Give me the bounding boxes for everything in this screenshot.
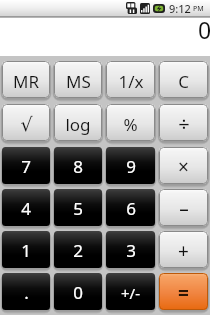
staticText: 1/x — [118, 70, 144, 93]
staticText: C — [178, 70, 189, 93]
staticText: 4 — [21, 197, 31, 220]
staticText: = — [178, 280, 189, 306]
other: 3G data — [126, 2, 137, 14]
staticText: 0 — [73, 281, 83, 304]
staticText: . — [24, 281, 29, 304]
button[interactable]: 3 — [106, 231, 155, 268]
staticText: 0 — [198, 14, 210, 45]
button[interactable]: 2 — [54, 231, 102, 268]
button[interactable]: MR — [2, 61, 50, 98]
staticText: 5 — [73, 197, 83, 220]
button[interactable]: 4 — [2, 189, 50, 226]
button[interactable]: 7 — [2, 147, 50, 184]
button[interactable]: + — [159, 231, 208, 268]
button[interactable]: MS — [54, 61, 102, 98]
staticText: MS — [66, 70, 91, 93]
button[interactable]: . — [2, 273, 50, 310]
button[interactable]: 9 — [106, 147, 155, 184]
button[interactable]: = — [159, 273, 208, 310]
staticText: 1 — [21, 239, 31, 262]
staticText: + — [178, 238, 189, 264]
button[interactable]: 5 — [54, 189, 102, 226]
staticText: +/- — [121, 283, 140, 303]
staticText: MR — [13, 70, 39, 93]
button[interactable]: 1 — [2, 231, 50, 268]
staticText: ÷ — [178, 110, 190, 137]
staticText: 7 — [21, 155, 31, 178]
button[interactable]: × — [159, 147, 208, 184]
button[interactable]: 0 — [54, 273, 102, 310]
button[interactable]: C — [159, 61, 208, 98]
button[interactable]: – — [159, 189, 208, 226]
staticText: √ — [20, 113, 33, 135]
staticText: × — [178, 154, 189, 180]
staticText: 6 — [126, 197, 136, 220]
button[interactable]: log — [54, 104, 102, 141]
staticText: 2 — [73, 239, 83, 262]
button[interactable]: √ — [2, 104, 50, 141]
button[interactable]: 8 — [54, 147, 102, 184]
button[interactable]: 1/x — [106, 61, 155, 98]
staticText: 3 — [126, 239, 136, 262]
button[interactable]: % — [106, 104, 155, 141]
staticText: 9 — [126, 155, 136, 178]
other: Signal strength — [140, 3, 150, 14]
staticText: 9:12 — [169, 1, 191, 16]
staticText: – — [179, 196, 189, 222]
staticText: log — [65, 113, 91, 136]
staticText: PM — [193, 4, 204, 14]
other: Battery charging — [153, 4, 165, 13]
button[interactable]: +/- — [106, 273, 155, 310]
staticText: 8 — [73, 155, 83, 178]
button[interactable]: 6 — [106, 189, 155, 226]
staticText: % — [123, 113, 138, 136]
button[interactable]: ÷ — [159, 104, 208, 141]
